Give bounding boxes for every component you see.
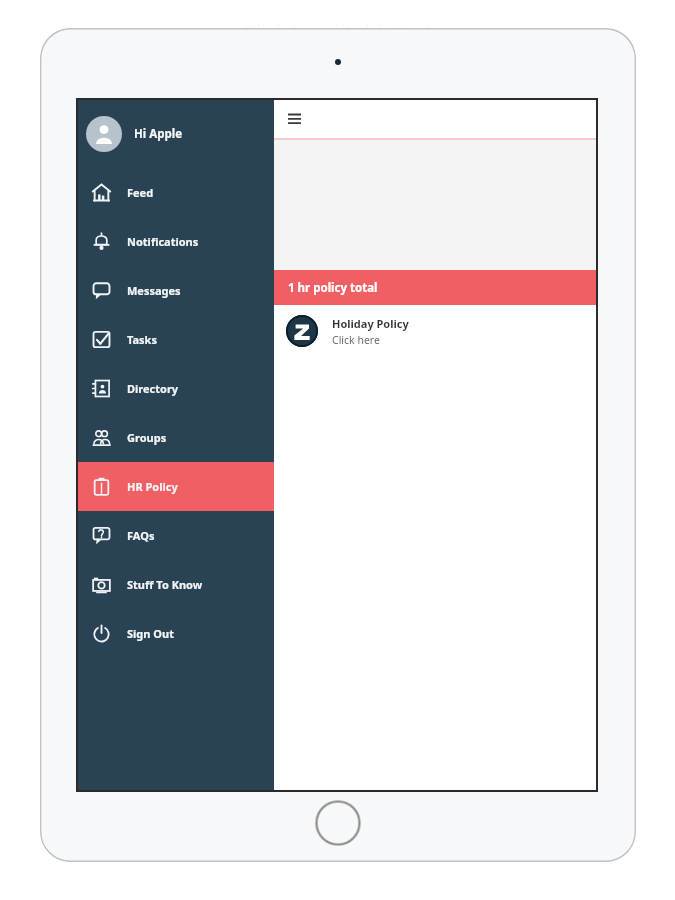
button[interactable]: Sign Out: [78, 609, 274, 658]
staticText: Messages: [127, 283, 181, 298]
button[interactable]: Hi Apple: [78, 108, 274, 160]
button[interactable]: FAQs: [78, 511, 274, 560]
button[interactable]: Groups: [78, 413, 274, 462]
staticText: Feed: [127, 185, 154, 200]
staticText: Holiday Policy: [332, 316, 409, 331]
button[interactable]: Holiday Policy: [274, 305, 596, 357]
staticText: Stuff To Know: [127, 577, 203, 592]
staticText: Sign Out: [127, 626, 174, 641]
button[interactable]: 1 hr policy total: [274, 270, 596, 305]
button[interactable]: HR Policy: [78, 462, 274, 511]
staticText: Hi Apple: [134, 126, 183, 142]
staticText: FAQs: [127, 528, 155, 543]
staticText: 1 hr policy total: [288, 280, 378, 296]
staticText: HR Policy: [127, 479, 178, 494]
button[interactable]: Tasks: [78, 315, 274, 364]
staticText: Click to edit this text: [243, 18, 433, 45]
button[interactable]: Stuff To Know: [78, 560, 274, 609]
button[interactable]: Directory: [78, 364, 274, 413]
button[interactable]: Open navigation menu: [280, 105, 308, 133]
staticText: Notifications: [127, 234, 199, 249]
staticText: Groups: [127, 430, 167, 445]
button[interactable]: Notifications: [78, 217, 274, 266]
button[interactable]: Feed: [78, 168, 274, 217]
staticText: Directory: [127, 381, 179, 396]
staticText: Tasks: [127, 332, 157, 347]
button[interactable]: Messages: [78, 266, 274, 315]
staticText: Click here: [332, 333, 380, 347]
